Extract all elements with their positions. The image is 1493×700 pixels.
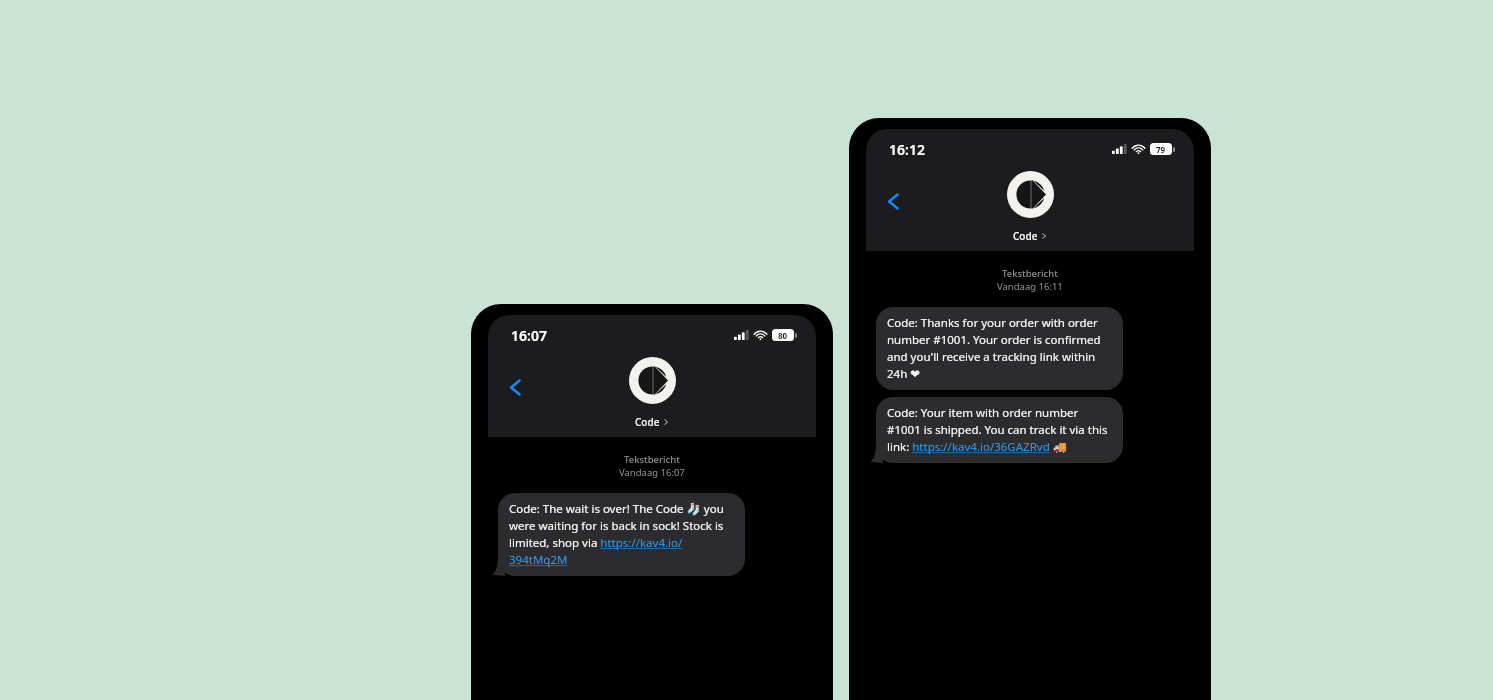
button[interactable]: Code: The wait is over! The Code 🧦 you w… <box>498 493 745 576</box>
button[interactable]: Code contact <box>1007 171 1054 218</box>
staticText: 80 <box>778 330 788 341</box>
button[interactable]: Code <box>1010 226 1050 246</box>
staticText: 16:12 <box>889 140 925 159</box>
staticText: Tekstbericht <box>1002 267 1058 280</box>
staticText: Tekstbericht <box>624 453 680 466</box>
staticText: Vandaag 16:07 <box>619 466 685 479</box>
button[interactable]: Code <box>632 412 672 432</box>
button[interactable]: Code: Thanks for your order with order n… <box>876 307 1123 390</box>
staticText: Code <box>635 415 660 429</box>
staticText: Code: Your item with order number #1001 … <box>887 405 1112 455</box>
staticText: 79 <box>1156 144 1166 155</box>
staticText: Code: The wait is over! The Code 🧦 you w… <box>509 501 734 568</box>
button[interactable]: Code contact <box>629 357 676 404</box>
staticText: Code: Thanks for your order with order n… <box>887 315 1112 382</box>
staticText: Vandaag 16:11 <box>997 280 1063 293</box>
button[interactable]: Code: Your item with order number #1001 … <box>876 397 1123 463</box>
button[interactable]: Back <box>877 185 909 217</box>
staticText: Code <box>1013 229 1038 243</box>
staticText: 16:07 <box>511 326 547 345</box>
button[interactable]: Back <box>499 371 531 403</box>
